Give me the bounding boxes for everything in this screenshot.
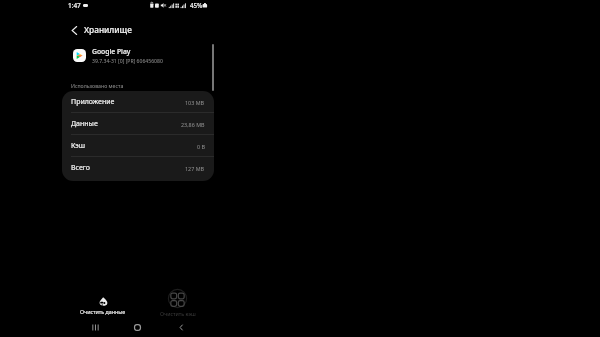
staticText: 23,86 MB bbox=[181, 121, 205, 128]
button[interactable]: Back bbox=[66, 22, 83, 39]
staticText: Приложение bbox=[71, 97, 115, 107]
button[interactable]: Recent apps bbox=[80, 318, 110, 337]
staticText: Кэш bbox=[71, 141, 86, 151]
staticText: Данные bbox=[71, 119, 98, 129]
staticText: Очистить кэш bbox=[160, 310, 196, 317]
button[interactable]: Back bbox=[166, 318, 196, 337]
staticText: 1:47 bbox=[68, 1, 81, 10]
staticText: 45% bbox=[190, 1, 203, 9]
button[interactable]: Кэш bbox=[62, 135, 214, 157]
staticText: Хранилище bbox=[84, 24, 132, 35]
staticText: 0 B bbox=[197, 143, 205, 150]
button[interactable]: Очистить данные bbox=[70, 290, 136, 317]
staticText: Очистить данные bbox=[80, 308, 126, 315]
button[interactable]: Приложение bbox=[62, 91, 214, 113]
button[interactable]: Home bbox=[122, 318, 152, 337]
staticText: 103 MB bbox=[185, 99, 205, 106]
staticText: 127 MB bbox=[185, 165, 205, 172]
staticText: 39.7.34-31 [0] [PR] 606456080 bbox=[92, 58, 163, 65]
button[interactable]: Очистить кэш bbox=[155, 288, 200, 317]
staticText: Всего bbox=[71, 163, 90, 173]
button[interactable]: Всего bbox=[62, 157, 214, 179]
staticText: Использовано места bbox=[71, 82, 124, 89]
staticText: Google Play bbox=[92, 47, 131, 56]
button[interactable]: Данные bbox=[62, 113, 214, 135]
